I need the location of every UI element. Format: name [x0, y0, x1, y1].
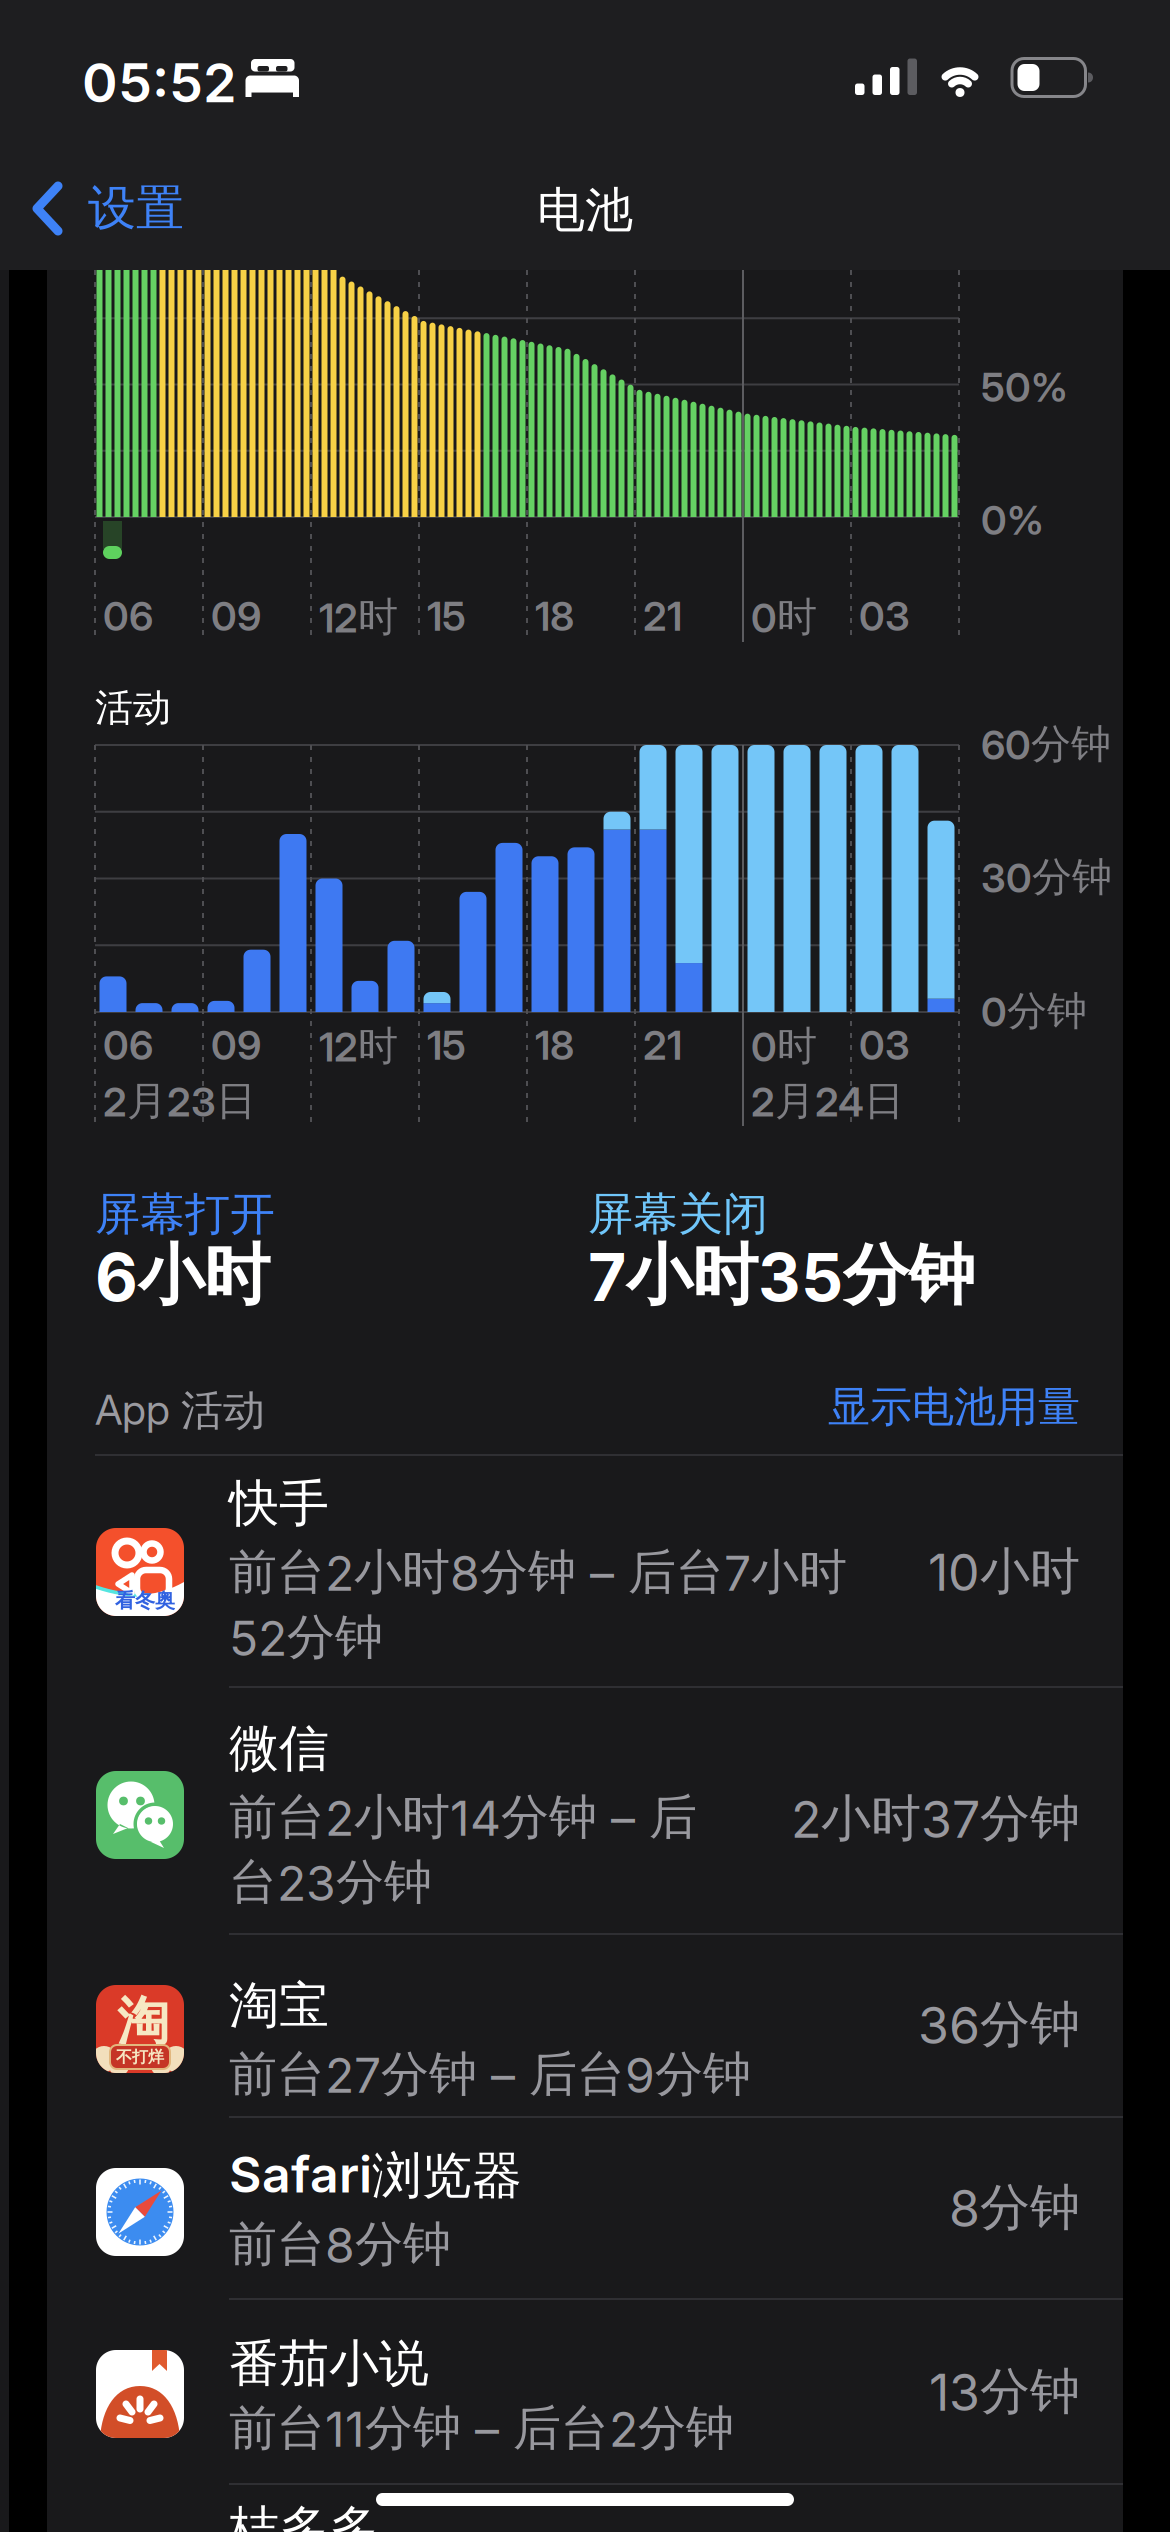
- staticText: 设置: [88, 178, 184, 238]
- staticText: 活动: [95, 684, 171, 732]
- staticText: 21: [643, 592, 682, 640]
- button[interactable]: 显示电池用量: [630, 1378, 1080, 1436]
- staticText: 前台2小时14分钟 – 后: [229, 1787, 697, 1847]
- staticText: 10小时: [928, 1540, 1080, 1603]
- button[interactable]: 返回设置: [24, 170, 204, 246]
- staticText: 60分钟: [981, 719, 1111, 769]
- staticText: 看冬奥: [115, 1588, 175, 1613]
- staticText: 前台8分钟: [229, 2214, 451, 2274]
- button[interactable]: 淘: [47, 1935, 1123, 2116]
- staticText: 台23分钟: [229, 1852, 432, 1912]
- staticText: 0时: [751, 1021, 817, 1071]
- staticText: 6小时: [95, 1234, 270, 1317]
- staticText: 0时: [751, 592, 817, 642]
- staticText: 2月24日: [751, 1076, 904, 1126]
- staticText: 前台2小时8分钟 – 后台7小时: [229, 1542, 847, 1602]
- staticText: 36分钟: [918, 1993, 1080, 2056]
- staticText: 03: [859, 1021, 910, 1069]
- staticText: 12时: [319, 1021, 398, 1071]
- staticText: 0分钟: [981, 986, 1087, 1036]
- staticText: 显示电池用量: [828, 1380, 1080, 1433]
- staticText: 06: [103, 1021, 153, 1069]
- staticText: 15: [427, 592, 466, 640]
- staticText: 09: [211, 592, 261, 640]
- staticText: 06: [103, 592, 153, 640]
- staticText: 8分钟: [949, 2176, 1080, 2239]
- staticText: 21: [643, 1021, 682, 1069]
- staticText: 13分钟: [929, 2360, 1080, 2423]
- staticText: 淘: [117, 1989, 169, 2054]
- staticText: 30分钟: [981, 852, 1112, 902]
- staticText: 7小时35分钟: [588, 1234, 975, 1317]
- staticText: 52分钟: [229, 1607, 383, 1667]
- staticText: 桔多多: [229, 2498, 379, 2532]
- staticText: 18: [535, 1021, 574, 1069]
- staticText: 50%: [981, 363, 1068, 411]
- staticText: App 活动: [95, 1384, 265, 1437]
- staticText: 前台27分钟 – 后台9分钟: [229, 2044, 751, 2104]
- button[interactable]: 看冬奥: [47, 1456, 1123, 1686]
- staticText: 屏幕打开: [95, 1186, 275, 1243]
- staticText: 不打烊: [116, 2047, 164, 2067]
- staticText: Safari浏览器: [229, 2144, 522, 2207]
- staticText: 微信: [229, 1717, 329, 1780]
- staticText: 屏幕关闭: [588, 1186, 768, 1243]
- staticText: 淘宝: [229, 1974, 329, 2037]
- staticText: 番茄小说: [229, 2332, 429, 2395]
- staticText: 0%: [981, 496, 1044, 544]
- staticText: 前台11分钟 – 后台2分钟: [229, 2398, 734, 2458]
- staticText: 15: [427, 1021, 466, 1069]
- staticText: 12时: [319, 592, 398, 642]
- staticText: 05:52: [82, 50, 237, 115]
- staticText: 03: [859, 592, 910, 640]
- button[interactable]: 番茄小说: [47, 2300, 1123, 2483]
- staticText: 18: [535, 592, 574, 640]
- staticText: 2小时37分钟: [791, 1787, 1080, 1850]
- staticText: 快手: [229, 1472, 329, 1535]
- button[interactable]: 微信: [47, 1688, 1123, 1933]
- button[interactable]: Safari浏览器: [47, 2118, 1123, 2298]
- staticText: 电池: [537, 180, 633, 240]
- staticText: 2月23日: [103, 1076, 256, 1126]
- staticText: 09: [211, 1021, 261, 1069]
